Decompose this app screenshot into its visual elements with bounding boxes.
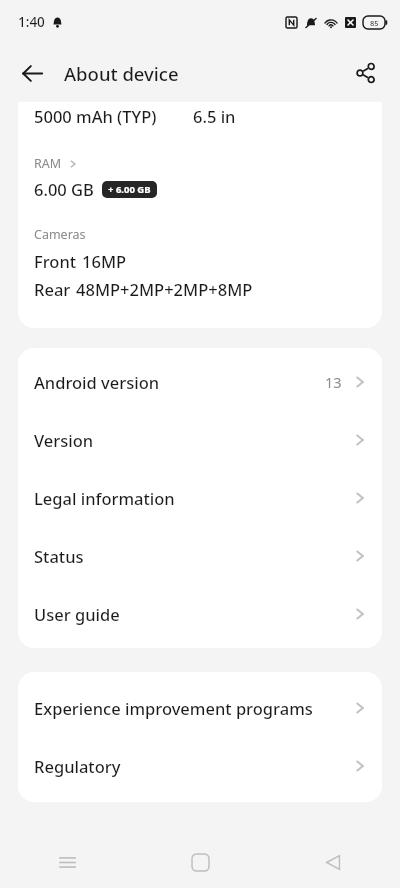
staticText: Front — [34, 250, 77, 272]
staticText: Version — [34, 429, 94, 451]
button[interactable]: Regulatory — [18, 737, 382, 795]
staticText: 1:40 — [18, 13, 45, 31]
button[interactable]: Back — [10, 51, 54, 95]
button[interactable]: Status — [18, 527, 382, 585]
staticText: 85 — [370, 18, 379, 28]
staticText: 6.00 GB — [34, 178, 94, 200]
button[interactable]: RAM — [34, 155, 78, 172]
staticText: 6.5 in — [193, 105, 236, 127]
staticText: 13 — [325, 372, 342, 392]
staticText: Android version — [34, 371, 160, 393]
staticText: Rear — [34, 278, 71, 300]
staticText: User guide — [34, 603, 120, 625]
staticText: 5000 mAh (TYP) — [34, 105, 157, 127]
button[interactable]: Share — [344, 51, 388, 95]
staticText: Cameras — [34, 226, 86, 243]
staticText: About device — [64, 61, 179, 86]
button[interactable]: Home — [134, 836, 267, 888]
button[interactable]: User guide — [18, 585, 382, 643]
button[interactable]: Version — [18, 411, 382, 469]
staticText: Status — [34, 545, 84, 567]
staticText: 48MP+2MP+2MP+8MP — [76, 278, 253, 300]
staticText: Regulatory — [34, 755, 121, 777]
button[interactable]: Legal information — [18, 469, 382, 527]
staticText: Legal information — [34, 487, 175, 509]
button[interactable]: Android version — [18, 353, 382, 411]
button[interactable]: Back — [267, 836, 400, 888]
button[interactable]: Recents — [0, 836, 134, 888]
staticText: + 6.00 GB — [108, 183, 151, 196]
staticText: 16MP — [82, 250, 127, 272]
button[interactable]: Experience improvement programs — [18, 679, 382, 737]
staticText: Experience improvement programs — [34, 697, 313, 719]
staticText: RAM — [34, 155, 62, 172]
